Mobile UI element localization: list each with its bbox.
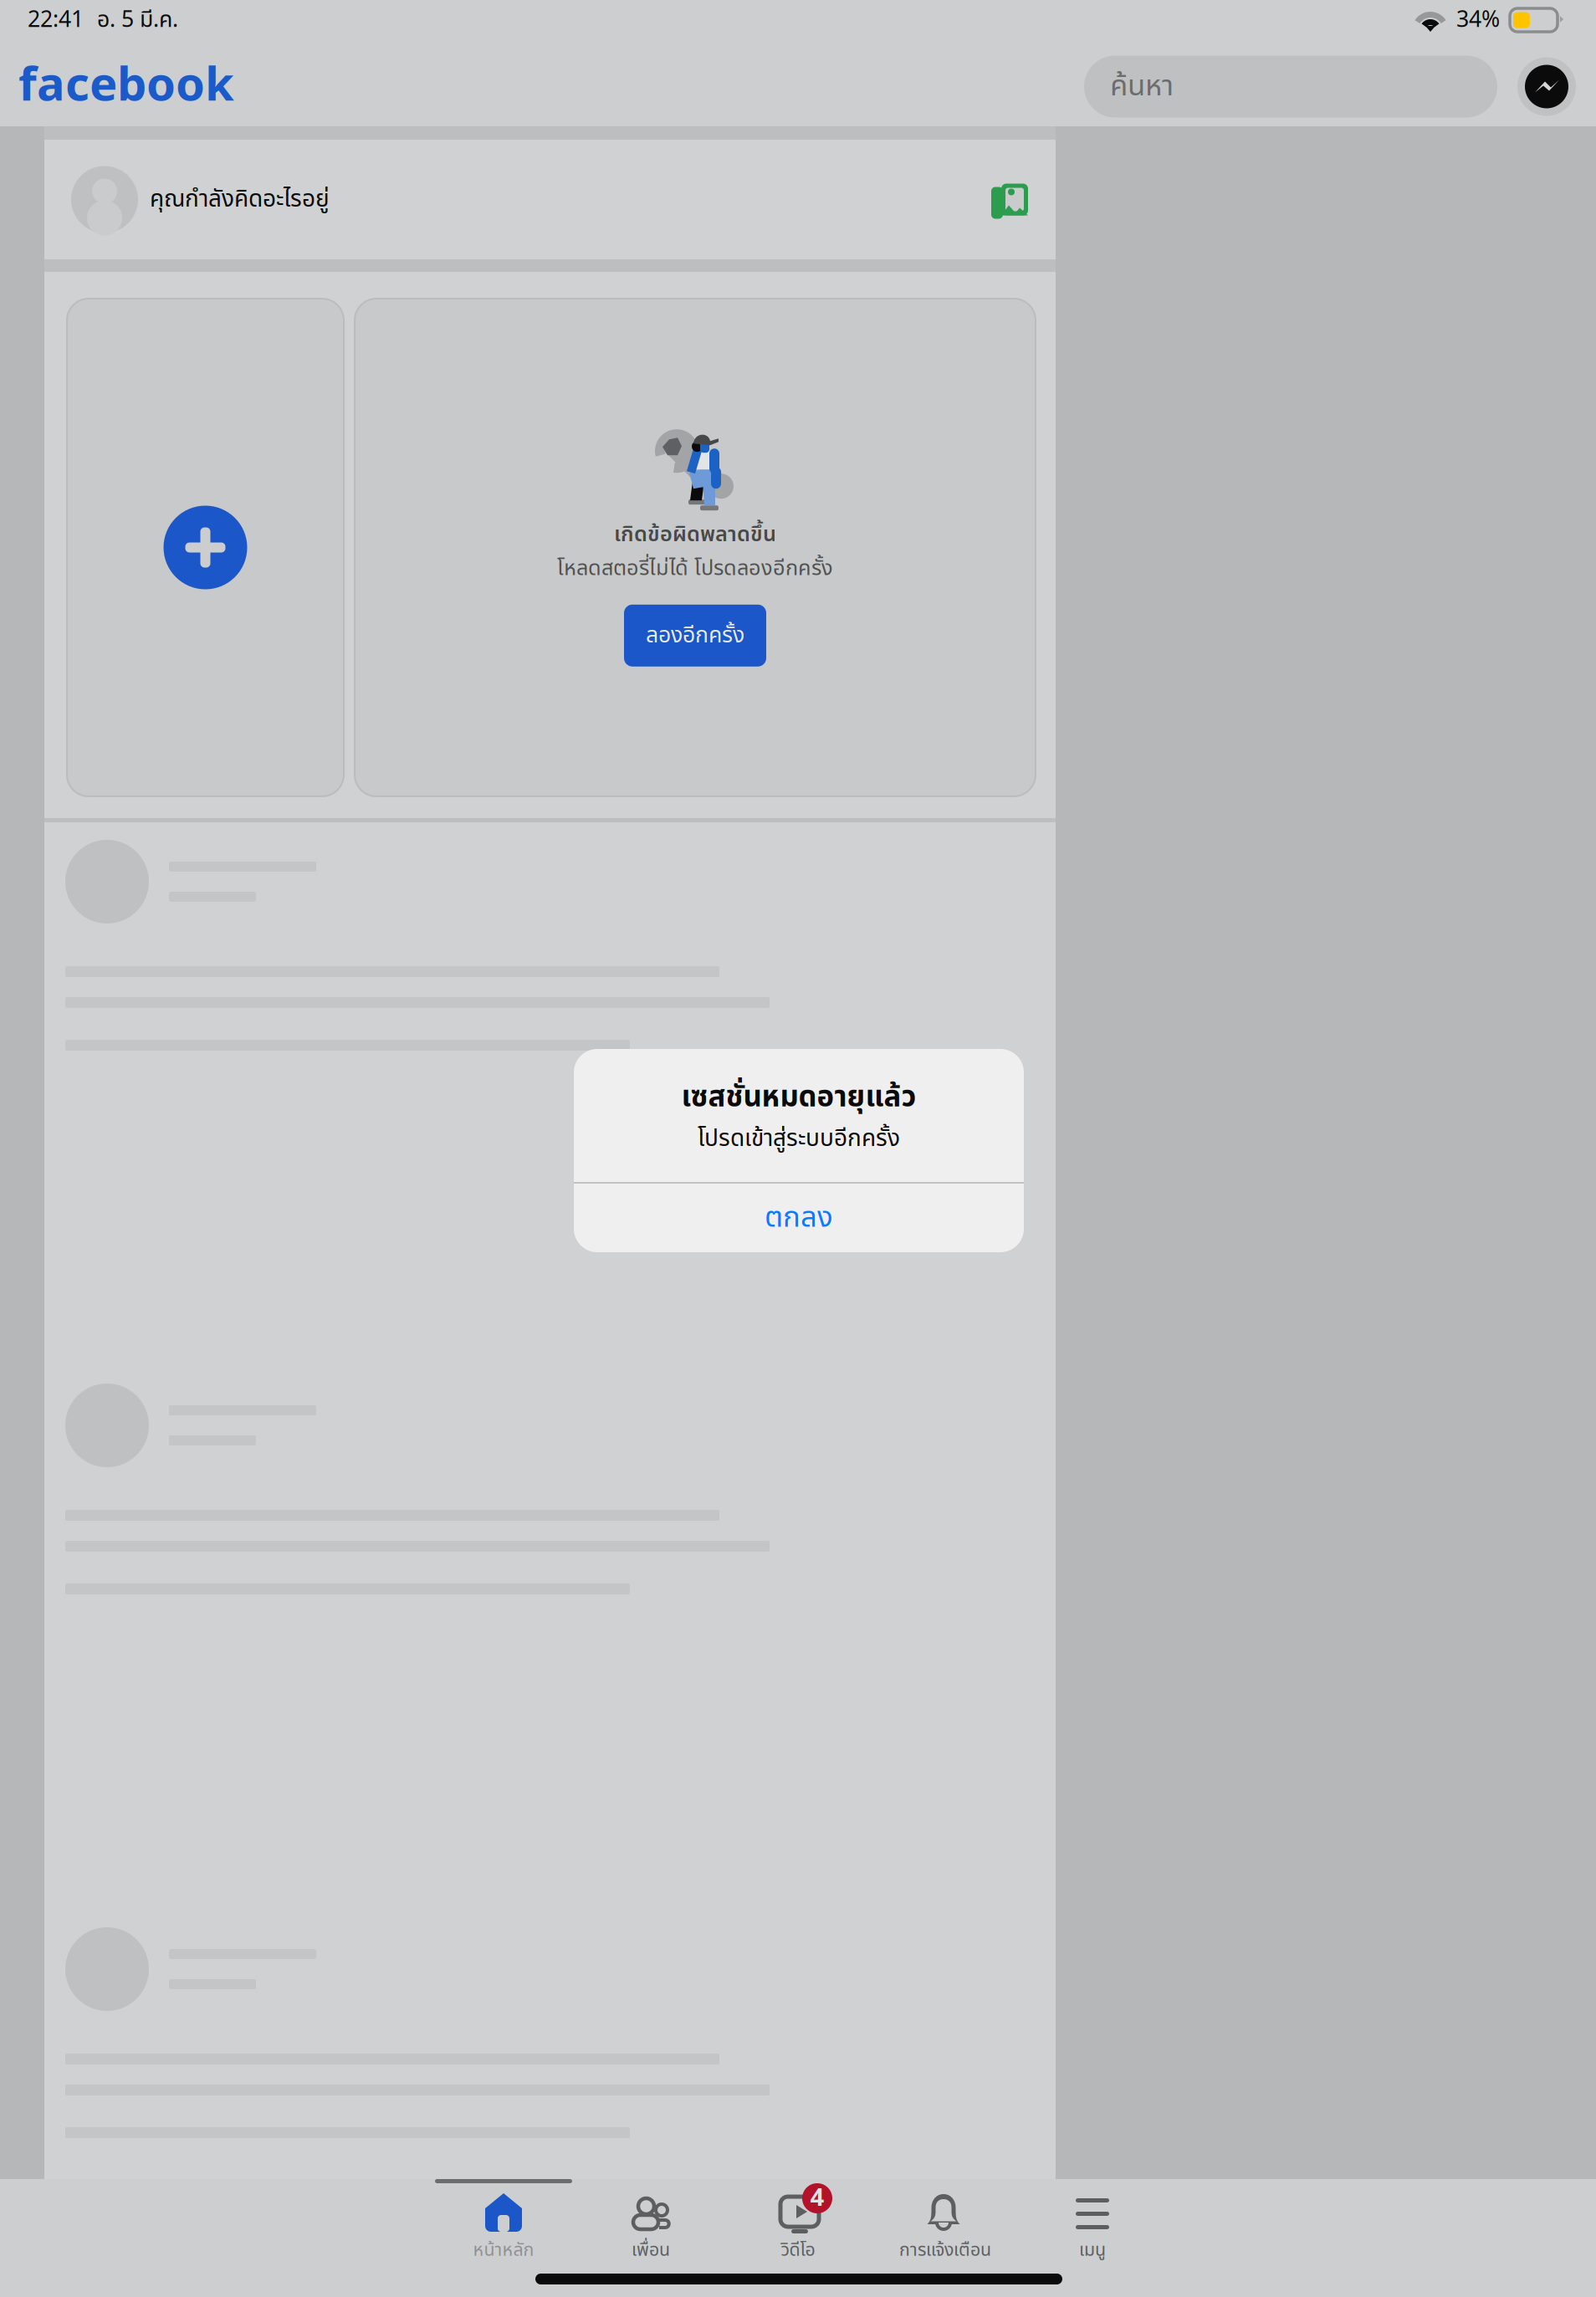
button[interactable]: Messenger (1517, 57, 1576, 116)
button[interactable]: การแจ้งเตือน (872, 2179, 1019, 2297)
button[interactable]: เพื่อน (577, 2179, 724, 2297)
staticText: โปรดเข้าสู่ระบบอีกครั้ง (698, 1121, 900, 1157)
staticText: การแจ้งเตือน (899, 2237, 991, 2264)
button[interactable]: ลองอีกครั้ง (624, 605, 766, 667)
staticText: เมนู (1079, 2237, 1106, 2264)
button[interactable]: หน้าหลัก (430, 2179, 577, 2297)
button[interactable]: Create story (67, 299, 344, 796)
staticText: ค้นหา (1110, 65, 1174, 108)
staticText: เกิดข้อผิดพลาดขึ้น (614, 519, 776, 551)
staticText: ลองอีกครั้ง (646, 619, 744, 652)
staticText: อ. 5 มี.ค. (97, 3, 178, 37)
staticText: 22:41 (28, 3, 84, 37)
staticText: โหลดสตอรี่ไม่ได้ โปรดลองอีกครั้ง (557, 553, 833, 585)
staticText: 4 (810, 2180, 824, 2217)
button[interactable]: 4 (724, 2179, 872, 2297)
button[interactable]: ค้นหา (1084, 56, 1497, 118)
staticText: วิดีโอ (781, 2237, 815, 2264)
staticText: 34% (1456, 3, 1500, 37)
button[interactable]: ตกลง (574, 1184, 1024, 1252)
staticText: คุณกำลังคิดอะไรอยู่ (150, 182, 330, 217)
button[interactable]: เมนู (1019, 2179, 1166, 2297)
staticText: เพื่อน (632, 2237, 670, 2264)
staticText: หน้าหลัก (473, 2237, 534, 2264)
staticText: เซสชั่นหมดอายุแล้ว (681, 1076, 916, 1120)
staticText: facebook (18, 51, 234, 114)
button[interactable]: คุณกำลังคิดอะไรอยู่ (44, 140, 1056, 259)
staticText: ตกลง (765, 1196, 833, 1240)
button[interactable]: facebook (18, 47, 234, 126)
